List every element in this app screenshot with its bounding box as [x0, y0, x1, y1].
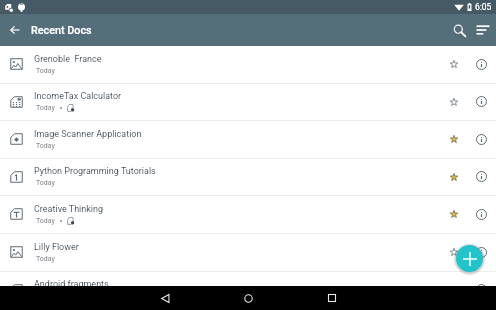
button[interactable]: Details [471, 121, 491, 159]
staticText: Today [36, 217, 55, 225]
button[interactable]: Details [471, 159, 491, 196]
button[interactable]: Details [471, 84, 491, 121]
staticText: Today [36, 104, 55, 112]
button[interactable]: Lilly Flower [0, 234, 496, 272]
button[interactable]: Details [471, 272, 491, 309]
button[interactable]: Star [444, 84, 464, 121]
button[interactable]: Star [444, 121, 464, 159]
button[interactable]: Star [444, 234, 464, 272]
button[interactable]: Star [444, 46, 464, 84]
button[interactable]: Home [207, 286, 290, 310]
staticText: Image Scanner Application [34, 129, 142, 140]
button[interactable]: Navigate up [4, 14, 26, 46]
button[interactable]: Star [444, 159, 464, 196]
staticText: Today [36, 179, 55, 187]
button[interactable]: Star [444, 272, 464, 309]
button[interactable]: Image Scanner Application [0, 121, 496, 159]
staticText: Lilly Flower [34, 242, 79, 253]
button[interactable]: Details [471, 46, 491, 84]
button[interactable]: Sort [471, 14, 495, 46]
button[interactable]: Back [124, 286, 207, 310]
button[interactable]: Python Programming Tutorials [0, 159, 496, 196]
staticText: Today [36, 142, 55, 150]
staticText: Recent Docs [31, 24, 92, 37]
staticText: Python Programming Tutorials [34, 166, 156, 177]
button[interactable]: Creative Thinking [0, 196, 496, 234]
staticText: 6:05 [475, 2, 492, 12]
staticText: Grenoble France [34, 54, 102, 65]
staticText: Today [36, 255, 55, 263]
button[interactable]: Details [471, 196, 491, 234]
button[interactable]: Grenoble France [0, 46, 496, 84]
button[interactable]: Star [444, 196, 464, 234]
staticText: Android fragments [34, 279, 109, 290]
button[interactable]: Recent apps [290, 286, 373, 310]
staticText: Today [36, 67, 55, 75]
staticText: Creative Thinking [34, 204, 104, 215]
staticText: IncomeTax Calculator [34, 91, 122, 102]
button[interactable]: Add [456, 245, 483, 272]
button[interactable]: IncomeTax Calculator [0, 84, 496, 121]
button[interactable]: Search [447, 14, 471, 46]
button[interactable]: Android fragments [0, 272, 496, 309]
button[interactable]: Details [471, 234, 491, 272]
